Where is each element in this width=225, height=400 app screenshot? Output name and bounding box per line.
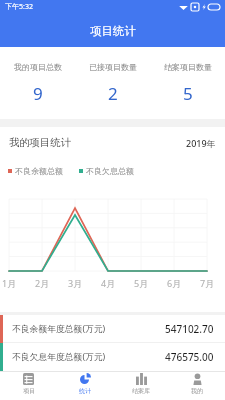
staticText: 不良欠息总额 xyxy=(86,166,134,176)
staticText: 我的项目统计 xyxy=(9,136,71,149)
staticText: 不良余额年度总额(万元) xyxy=(12,323,106,335)
staticText: 我的 xyxy=(191,387,203,395)
staticText: 4月 xyxy=(101,277,116,289)
button[interactable]: 已接项目数量 xyxy=(75,47,150,119)
staticText: 结案项目数量 xyxy=(164,62,212,72)
staticText: 5月 xyxy=(134,277,149,289)
staticText: 统计 xyxy=(79,387,91,395)
staticText: 已接项目数量 xyxy=(89,62,137,72)
button[interactable]: 结案库 xyxy=(113,372,169,400)
button[interactable]: 不良余额年度总额(万元) xyxy=(0,315,225,343)
staticText: 不良余额总额 xyxy=(15,166,63,176)
staticText: 结案库 xyxy=(132,387,150,395)
staticText: 1月 xyxy=(2,277,17,289)
staticText: 我的项目总数 xyxy=(14,62,62,72)
staticText: 不良欠息年度总额(万元) xyxy=(12,351,106,363)
staticText: 3月 xyxy=(68,277,83,289)
button[interactable]: 不良欠息年度总额(万元) xyxy=(0,343,225,371)
staticText: 下午5:32 xyxy=(5,2,33,12)
staticText: 9 xyxy=(33,82,43,105)
staticText: 547102.70 xyxy=(165,322,214,336)
button[interactable]: 统计 xyxy=(57,372,113,400)
button[interactable]: 结案项目数量 xyxy=(150,47,225,119)
staticText: 2月 xyxy=(35,277,50,289)
staticText: 项目统计 xyxy=(90,24,136,38)
staticText: 5 xyxy=(183,82,193,105)
staticText: 2 xyxy=(108,82,118,105)
staticText: 2019年 xyxy=(186,137,216,149)
staticText: 6月 xyxy=(167,277,182,289)
staticText: 7月 xyxy=(200,277,215,289)
button[interactable]: 我的 xyxy=(169,372,225,400)
button[interactable]: 我的项目总数 xyxy=(0,47,75,119)
staticText: 476575.00 xyxy=(165,350,214,364)
button[interactable]: 项目 xyxy=(0,372,57,400)
staticText: 项目 xyxy=(23,387,35,395)
